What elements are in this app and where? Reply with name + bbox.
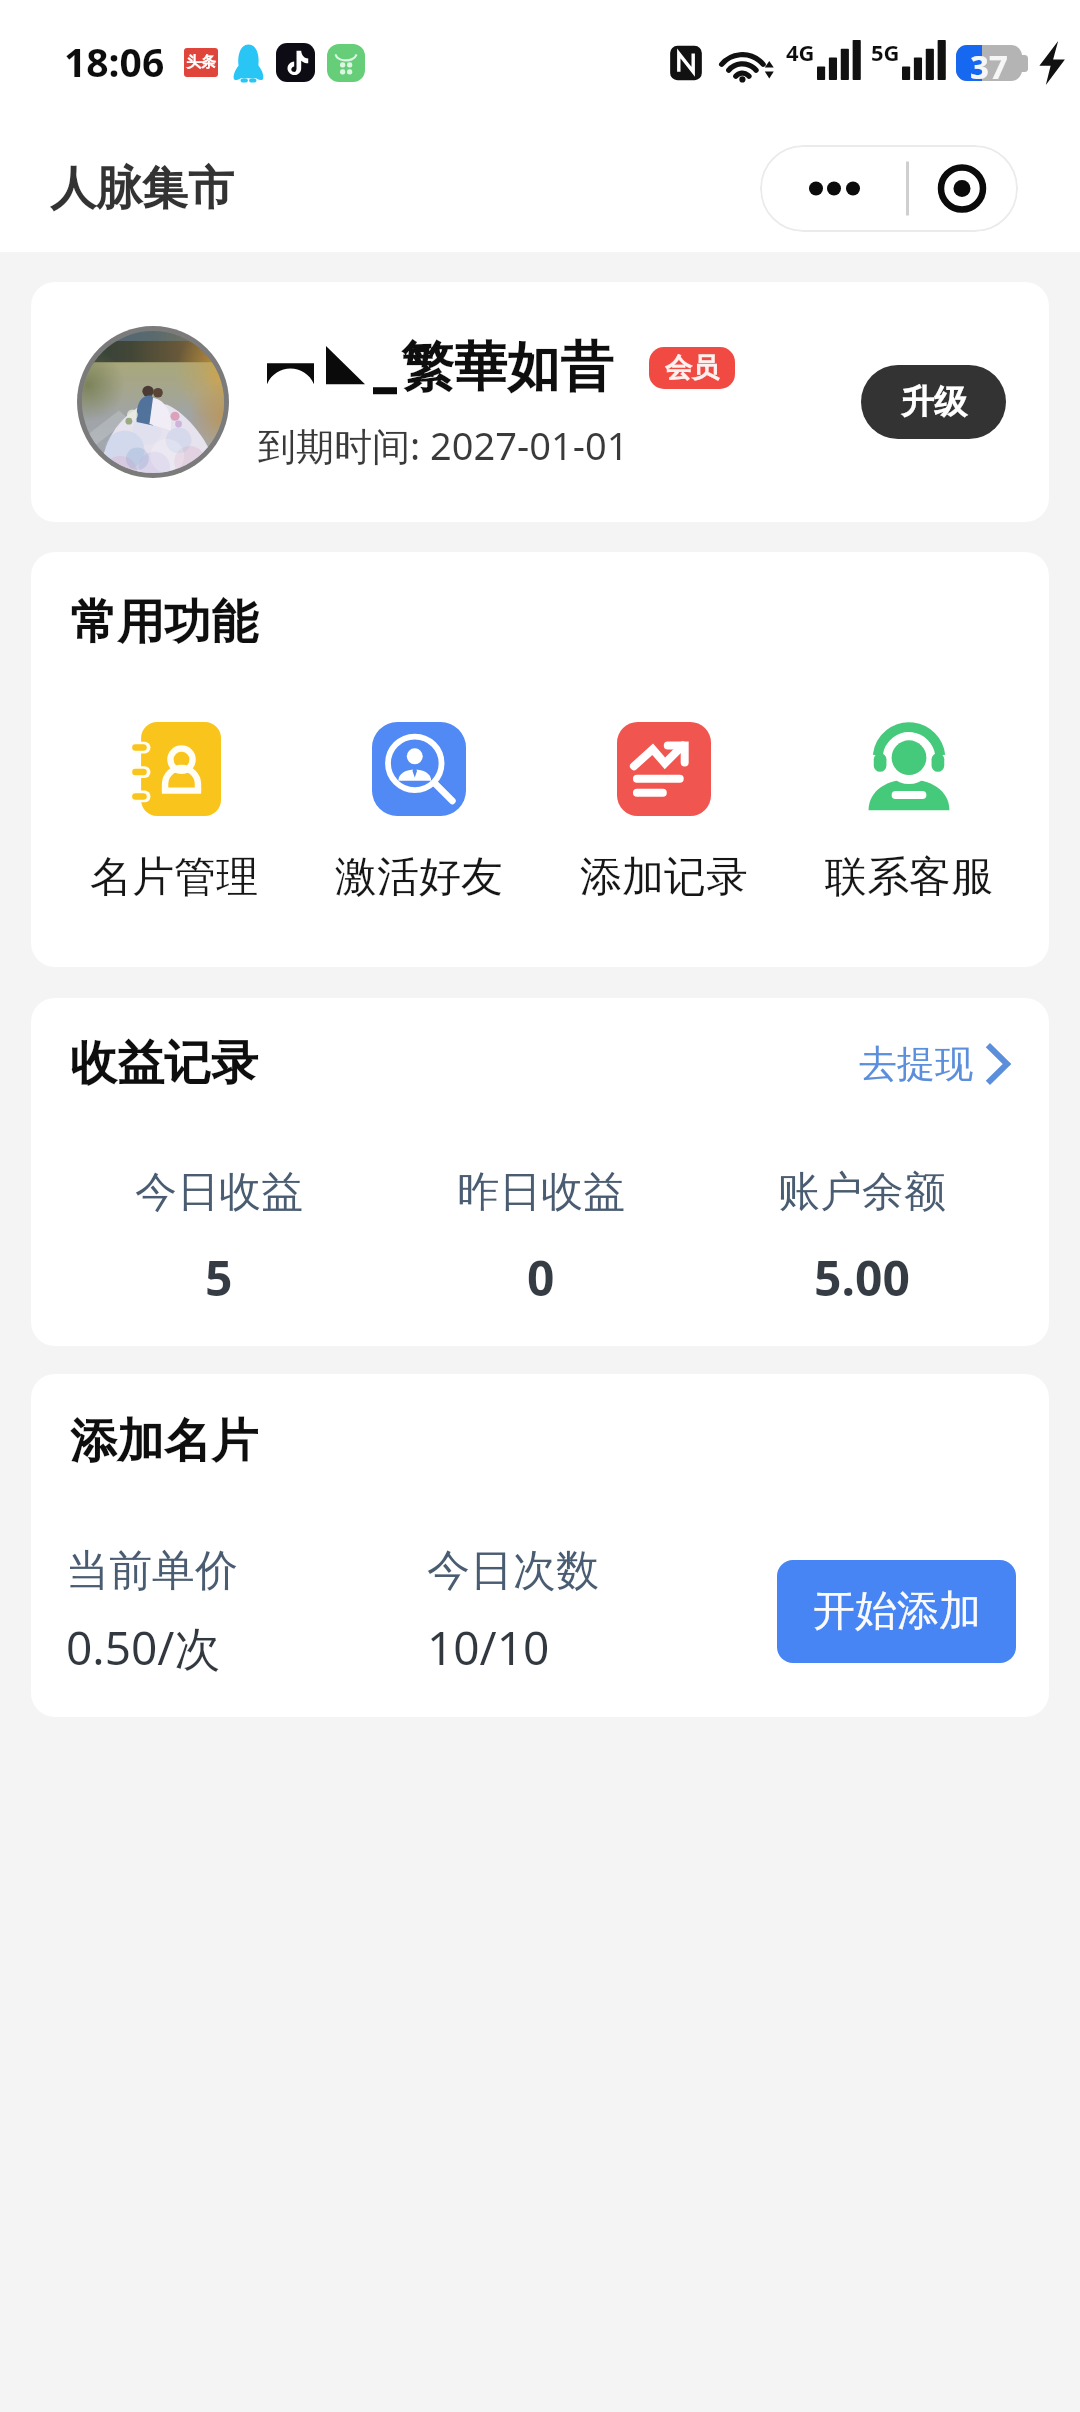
- staticText: 人脉集市: [50, 160, 234, 218]
- staticText: 37: [970, 44, 1008, 80]
- staticText: 头条: [186, 53, 216, 72]
- staticText: 5: [205, 1245, 233, 1310]
- staticText: 今日次数: [427, 1544, 599, 1598]
- button[interactable]: 繁華如昔: [31, 282, 1049, 522]
- staticText: 账户余额: [778, 1166, 946, 1219]
- staticText: 0.50/次: [66, 1616, 221, 1679]
- staticText: 今日收益: [135, 1166, 303, 1219]
- staticText: 添加名片: [70, 1412, 258, 1471]
- staticText: 18:06: [64, 35, 165, 88]
- staticText: 添加记录: [580, 851, 748, 904]
- button[interactable]: 开始添加: [777, 1560, 1016, 1663]
- staticText: 0: [527, 1245, 555, 1310]
- staticText: 升级: [901, 381, 967, 423]
- staticText: 繁華如昔: [401, 334, 613, 401]
- button[interactable]: 升级: [861, 365, 1006, 439]
- button[interactable]: 激活好友: [307, 722, 531, 904]
- staticText: 常用功能: [70, 593, 258, 652]
- staticText: 10/10: [427, 1616, 550, 1679]
- button[interactable]: 名片管理: [62, 722, 286, 904]
- staticText: 4G: [786, 37, 815, 67]
- staticText: 到期时间: 2027-01-01: [258, 419, 629, 471]
- staticText: 会员: [665, 351, 719, 385]
- button[interactable]: 添加记录: [552, 722, 776, 904]
- button[interactable]: 去提现: [853, 1032, 1015, 1096]
- staticText: 5G: [871, 37, 900, 67]
- staticText: 激活好友: [335, 851, 503, 904]
- staticText: 昨日收益: [457, 1166, 625, 1219]
- staticText: 开始添加: [813, 1585, 981, 1638]
- staticText: 5.00: [814, 1245, 910, 1310]
- button[interactable]: 联系客服: [797, 722, 1021, 904]
- staticText: 联系客服: [825, 851, 993, 904]
- staticText: 名片管理: [90, 851, 258, 904]
- staticText: 当前单价: [66, 1544, 238, 1598]
- staticText: 去提现: [859, 1040, 973, 1088]
- staticText: 收益记录: [70, 1034, 258, 1093]
- button[interactable]: More options and close mini program: [760, 145, 1018, 232]
